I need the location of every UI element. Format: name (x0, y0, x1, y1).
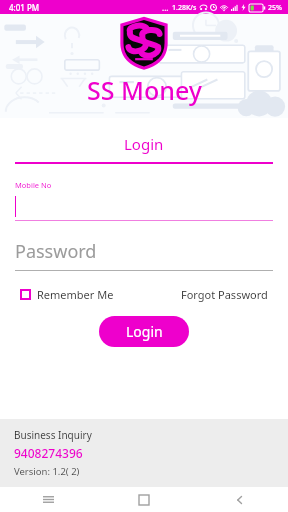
button[interactable]: Forgot Password (181, 287, 268, 302)
staticText: Mobile No (15, 180, 52, 190)
button[interactable]: Back (192, 487, 288, 512)
staticText: Version: 1.2( 2) (14, 465, 80, 478)
button[interactable]: Home (96, 487, 192, 512)
button[interactable]: Recents (0, 487, 96, 512)
button[interactable]: 9408274396 (14, 445, 83, 461)
button[interactable]: Remember Me (20, 287, 114, 302)
button[interactable]: Password (15, 239, 273, 271)
staticText: ... (162, 2, 169, 13)
button[interactable]: Login (0, 134, 288, 154)
staticText: Login (124, 134, 164, 154)
staticText: Password (15, 239, 97, 264)
staticText: 25% (268, 3, 282, 13)
staticText: Remember Me (37, 287, 114, 302)
staticText: 4:01 PM (9, 2, 40, 13)
button[interactable]: Mobile No (15, 180, 273, 221)
staticText: Login (126, 322, 163, 341)
staticText: Business Inquiry (14, 428, 92, 442)
staticText: 1.28K/s (172, 3, 197, 13)
staticText: SS Money (87, 73, 202, 107)
button[interactable]: Login (99, 316, 189, 347)
